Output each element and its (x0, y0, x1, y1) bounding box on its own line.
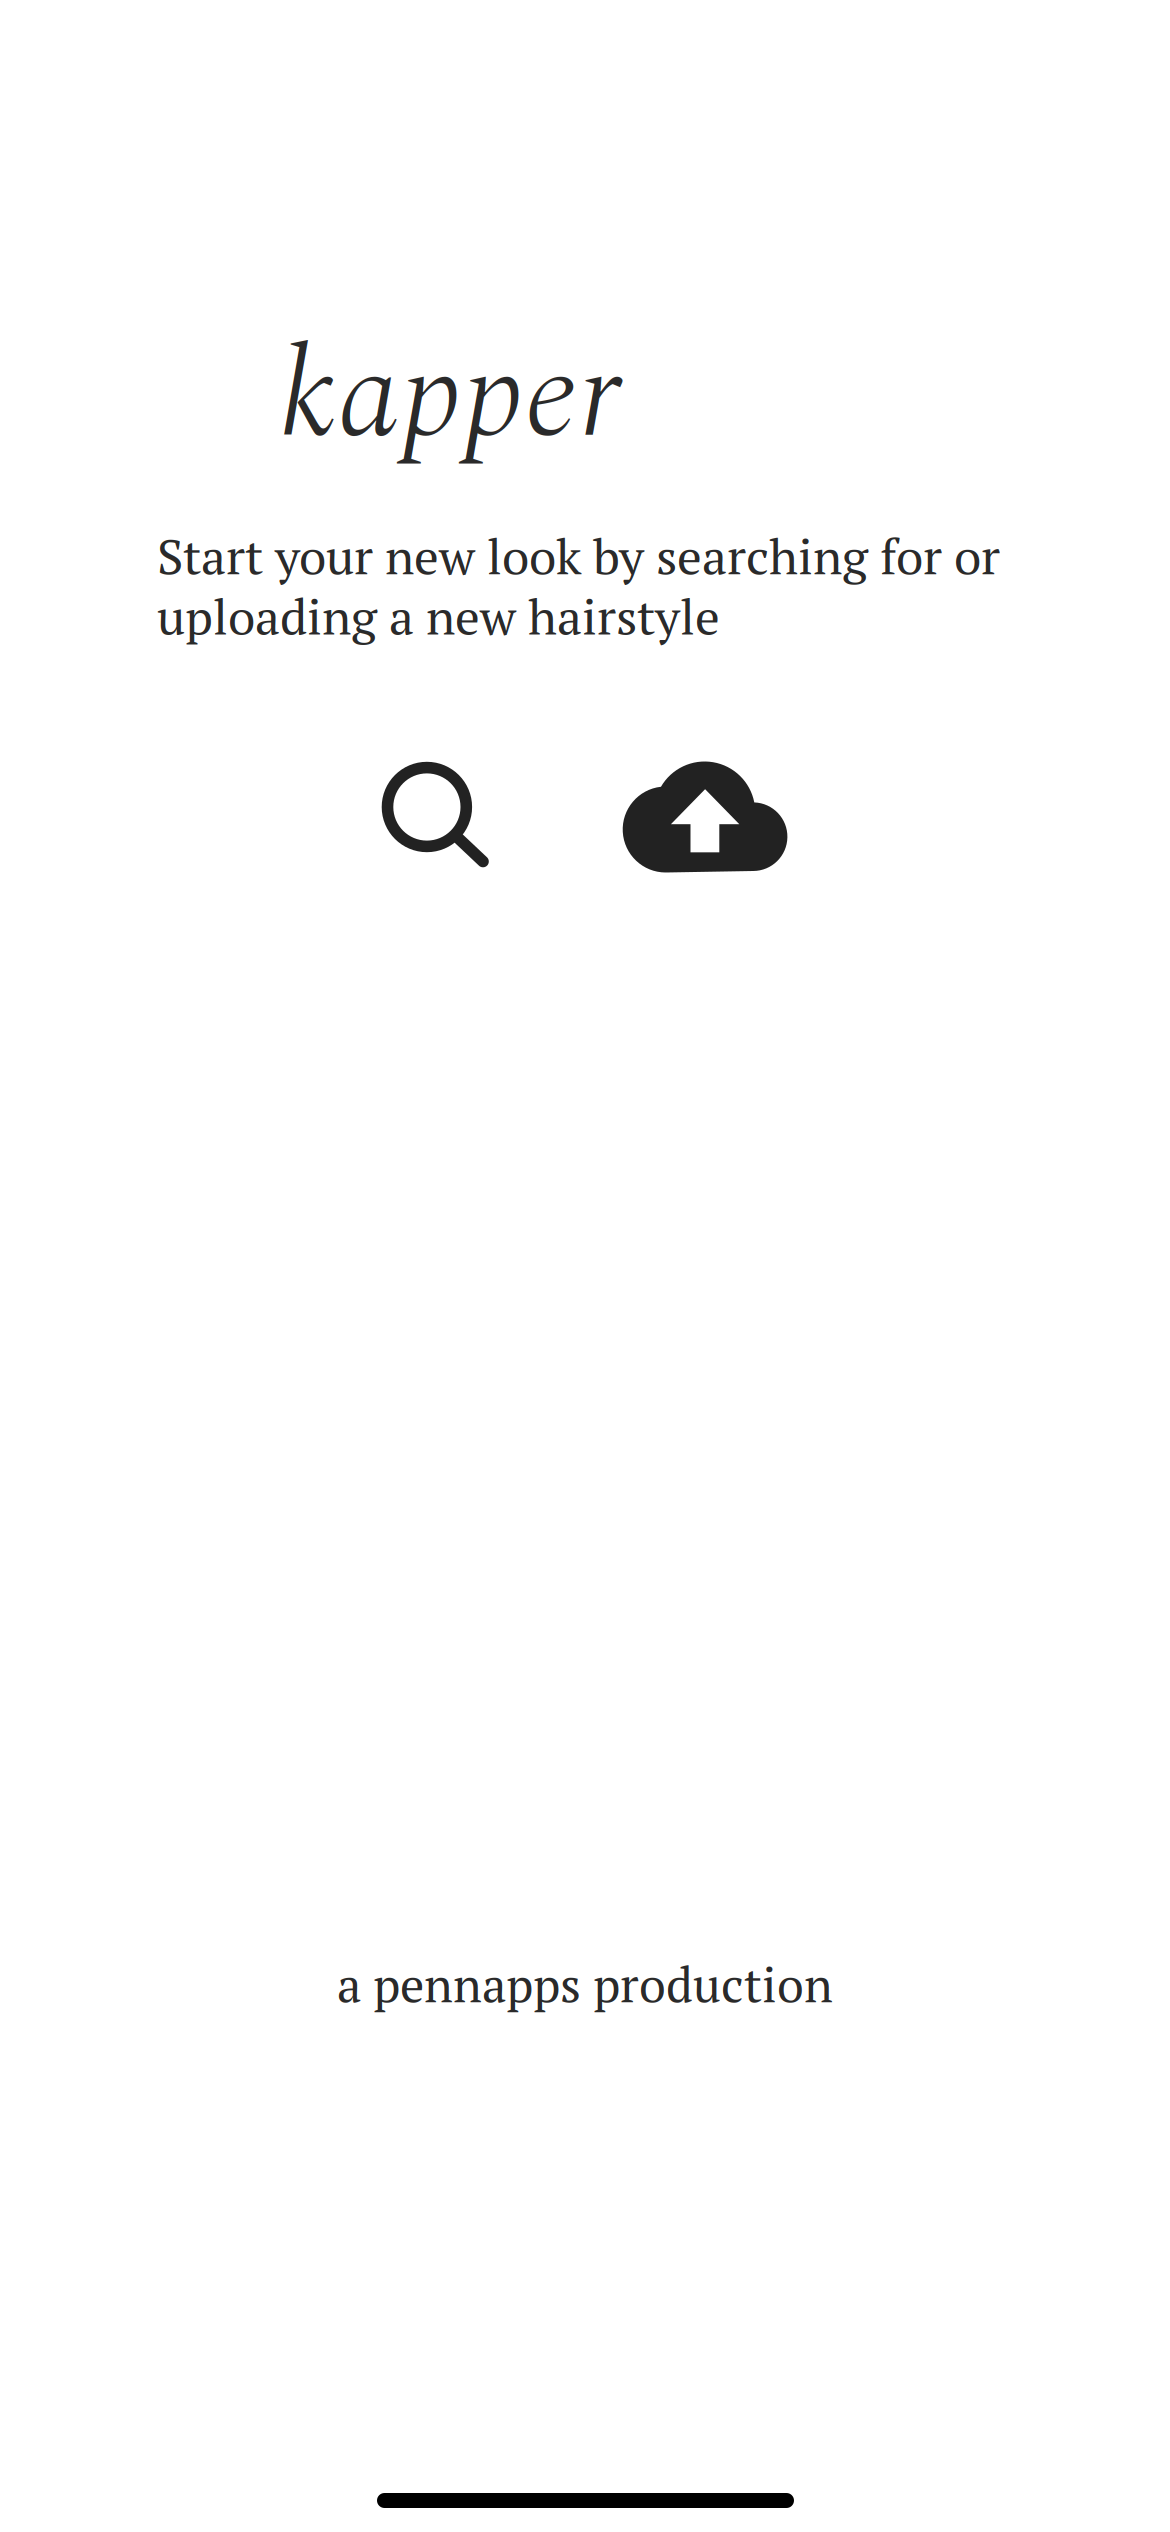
staticText: Start your new look by searching for or … (157, 523, 1000, 649)
staticText: kapper (278, 302, 620, 493)
button[interactable]: Upload a hairstyle photo (623, 761, 788, 874)
staticText: a pennapps production (337, 1952, 833, 2016)
button[interactable]: Search for a hairstyle (382, 761, 488, 874)
